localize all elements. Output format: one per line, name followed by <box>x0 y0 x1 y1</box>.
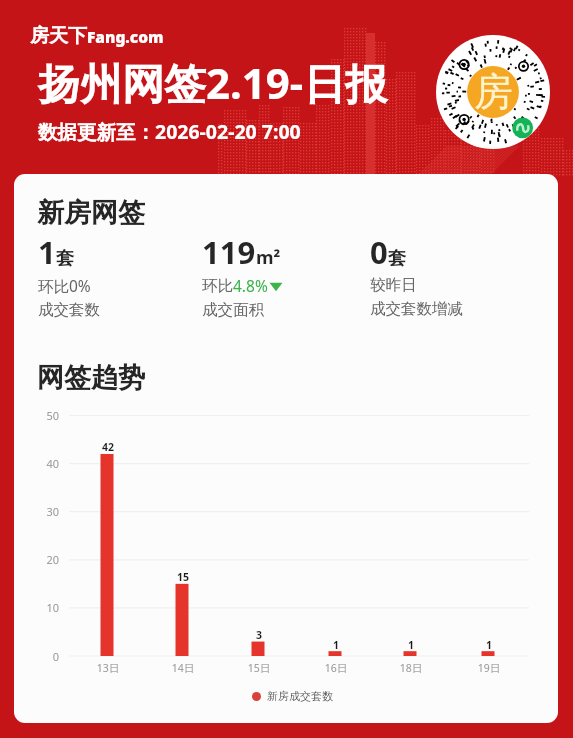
staticText: 环比 <box>202 276 233 296</box>
button[interactable]: 1 <box>38 231 100 320</box>
staticText: 成交面积 <box>202 300 264 320</box>
staticText: 网签趋势 <box>37 361 145 395</box>
staticText: 1 <box>38 231 56 273</box>
staticText: 20 <box>33 552 59 567</box>
staticText: 新房成交套数 <box>267 689 333 703</box>
staticText: 成交套数 <box>38 300 100 320</box>
staticText: 房 <box>474 67 513 116</box>
staticText: 40 <box>33 456 59 471</box>
staticText: 13日 <box>82 661 134 675</box>
button[interactable]: 房天下 <box>30 24 164 48</box>
staticText: Fang.com <box>87 26 164 47</box>
button[interactable]: 新房成交套数 <box>252 689 333 703</box>
staticText: 3 <box>233 628 285 642</box>
staticText: 0 <box>33 649 59 664</box>
button[interactable]: 0 <box>370 231 463 319</box>
staticText: 环比0% <box>38 275 91 296</box>
staticText: 19日 <box>463 661 515 675</box>
staticText: m² <box>256 245 281 270</box>
button[interactable]: 119 <box>202 231 283 320</box>
staticText: 0 <box>370 231 388 273</box>
staticText: 扬州网签2.19-日报 <box>38 54 388 111</box>
staticText: 30 <box>33 504 59 519</box>
staticText: 较昨日 <box>370 275 417 295</box>
staticText: 50 <box>33 408 59 423</box>
staticText: 14日 <box>157 661 209 675</box>
staticText: 1 <box>385 638 437 652</box>
staticText: 套 <box>56 247 74 270</box>
staticText: 1 <box>463 638 515 652</box>
staticText: 房天下 <box>30 24 87 48</box>
staticText: 4.8% <box>233 275 268 296</box>
staticText: 119 <box>202 231 256 273</box>
staticText: 数据更新至：2026-02-20 7:00 <box>38 118 301 145</box>
staticText: 成交套数增减 <box>370 299 463 319</box>
staticText: 16日 <box>310 661 362 675</box>
staticText: 10 <box>33 600 59 615</box>
staticText: 套 <box>388 247 406 270</box>
staticText: 新房网签 <box>37 196 145 230</box>
staticText: 15 <box>157 570 209 584</box>
staticText: 1 <box>310 638 362 652</box>
staticText: 42 <box>82 440 134 454</box>
button[interactable]: 扫码关注房天下小程序 <box>436 35 550 149</box>
staticText: 18日 <box>385 661 437 675</box>
staticText: 15日 <box>233 661 285 675</box>
